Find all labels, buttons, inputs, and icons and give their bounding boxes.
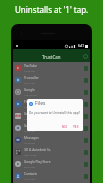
button[interactable]: Messages	[13, 134, 90, 146]
staticText: Google	[24, 88, 35, 92]
staticText: Do you want to Uninstall this app?	[29, 111, 81, 115]
button[interactable]: Uninstall	[84, 162, 88, 167]
button[interactable]: Uninstall	[84, 66, 88, 71]
staticText: Gmail	[24, 112, 33, 116]
staticText: 6:41	[78, 44, 84, 48]
button[interactable]: Contacts	[13, 170, 90, 182]
staticText: 18.24 MB	[24, 105, 35, 108]
button[interactable]: Account	[83, 54, 88, 59]
staticText: 72.11 MB	[24, 117, 35, 120]
button[interactable]: Uninstall	[84, 174, 88, 179]
staticText: Truecaller	[24, 76, 39, 80]
staticText: 120.54 MB	[24, 93, 37, 96]
button[interactable]: Uninstall	[84, 138, 88, 143]
staticText: Uninstalls at '1' tap.	[15, 4, 89, 15]
staticText: Files	[35, 100, 46, 107]
button[interactable]: Uninstall	[84, 114, 88, 119]
button[interactable]: Uninstall	[84, 102, 88, 107]
button[interactable]: Uninstall	[84, 150, 88, 155]
staticText: Files	[24, 100, 31, 104]
button[interactable]: Gallery	[13, 122, 90, 134]
staticText: YES	[73, 125, 79, 129]
button[interactable]: Uninstall	[84, 90, 88, 95]
staticText: Messages	[24, 136, 39, 140]
staticText: 44.08 MB	[24, 141, 35, 144]
staticText: YouTube	[24, 64, 37, 68]
button[interactable]: Google Play Store	[13, 158, 90, 170]
staticText: 88.56 MB	[24, 165, 35, 168]
staticText: Gallery	[24, 124, 35, 128]
button[interactable]: YES	[72, 124, 80, 130]
staticText: 33.66 MB	[24, 69, 35, 72]
button[interactable]: Google	[13, 86, 90, 98]
button[interactable]: YouTube	[13, 62, 90, 74]
staticText: 200.14 MB	[24, 153, 37, 156]
staticText: NO	[62, 125, 67, 129]
button[interactable]: 3D & Autodesk Sc.	[13, 146, 90, 158]
button[interactable]: Uninstall	[84, 126, 88, 131]
button[interactable]: Uninstall	[84, 78, 88, 83]
staticText: TrustCan	[42, 54, 61, 60]
button[interactable]: Files	[13, 98, 90, 110]
staticText: Contacts	[24, 172, 38, 176]
staticText: 92.41 MB	[24, 81, 35, 84]
staticText: 3D & Autodesk Sc.	[24, 148, 52, 152]
staticText: Google Play Store	[24, 160, 51, 164]
button[interactable]: Gmail	[13, 110, 90, 122]
button[interactable]: Truecaller	[13, 74, 90, 86]
button[interactable]: NO	[61, 124, 68, 130]
staticText: 12.07 MB	[24, 177, 35, 180]
staticText: 55.30 MB	[24, 129, 35, 132]
